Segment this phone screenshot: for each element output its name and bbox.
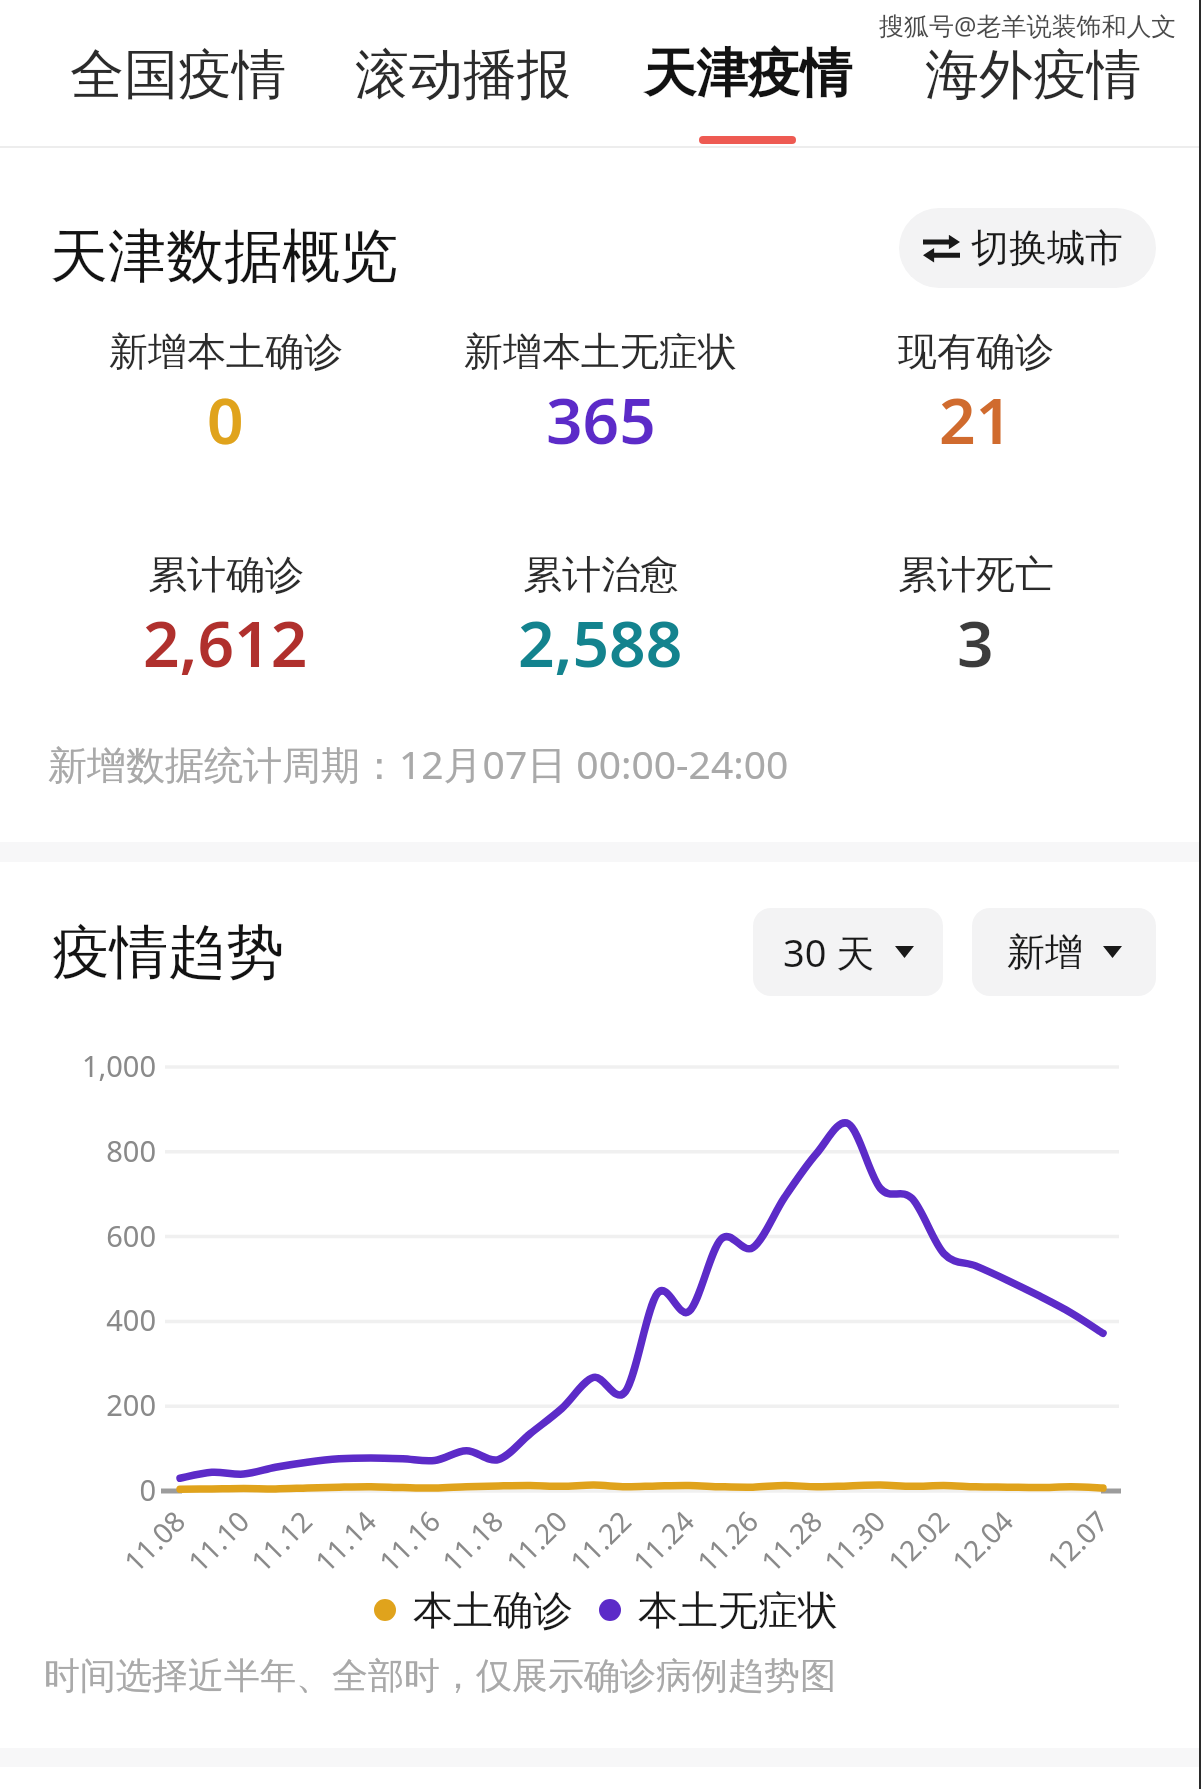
button[interactable]: 新增: [972, 908, 1156, 996]
button[interactable]: 新增本土确诊: [38, 327, 413, 463]
staticText: 本土无症状: [638, 1585, 838, 1635]
staticText: 新增本土无症状: [464, 327, 737, 376]
button[interactable]: 本土无症状: [599, 1585, 838, 1635]
staticText: 600: [0, 1216, 156, 1255]
staticText: 累计死亡: [898, 550, 1054, 599]
staticText: 天津疫情: [644, 41, 852, 107]
staticText: 12.04: [943, 1496, 1027, 1580]
staticText: 滚动播报: [355, 41, 571, 109]
staticText: 天津数据概览: [50, 220, 398, 293]
other: 切换城市: [923, 233, 960, 263]
staticText: 2,588: [518, 599, 683, 686]
staticText: 海外疫情: [925, 41, 1141, 109]
button[interactable]: 新增本土无症状: [413, 327, 788, 463]
button[interactable]: 天津疫情: [605, 0, 890, 150]
staticText: 30 天: [783, 926, 875, 978]
staticText: 时间选择近半年、全部时，仅展示确诊病例趋势图: [44, 1653, 836, 1698]
button[interactable]: 切换城市: [899, 208, 1156, 288]
staticText: 400: [0, 1300, 156, 1339]
staticText: 3: [957, 599, 994, 686]
staticText: 11.08: [115, 1496, 199, 1580]
staticText: 11.26: [688, 1496, 772, 1580]
staticText: 现有确诊: [898, 327, 1054, 376]
staticText: 11.28: [752, 1496, 836, 1580]
button[interactable]: 滚动播报: [320, 0, 605, 150]
staticText: 11.20: [497, 1496, 581, 1580]
staticText: 800: [0, 1131, 156, 1170]
staticText: 新增本土确诊: [109, 327, 343, 376]
staticText: 累计治愈: [523, 550, 679, 599]
staticText: 全国疫情: [70, 41, 286, 109]
staticText: 0: [207, 376, 244, 463]
staticText: 12.02: [879, 1496, 963, 1580]
staticText: 11.14: [306, 1496, 390, 1580]
button[interactable]: 全国疫情: [35, 0, 320, 150]
button[interactable]: 累计确诊: [38, 550, 413, 686]
button[interactable]: 现有确诊: [788, 327, 1163, 463]
button[interactable]: 累计死亡: [788, 550, 1163, 686]
staticText: 切换城市: [971, 224, 1123, 272]
staticText: 1,000: [0, 1046, 156, 1085]
staticText: 2,612: [143, 599, 308, 686]
button[interactable]: 本土确诊: [374, 1585, 573, 1635]
staticText: 搜狐号@老羊说装饰和人文: [879, 8, 1177, 42]
button[interactable]: 30 天: [753, 908, 943, 996]
staticText: 11.18: [433, 1496, 517, 1580]
staticText: 11.16: [370, 1496, 454, 1580]
staticText: 12.07: [1038, 1496, 1122, 1580]
staticText: 新增: [1007, 928, 1083, 976]
staticText: 11.10: [179, 1496, 263, 1580]
staticText: 11.30: [815, 1496, 899, 1580]
staticText: 11.12: [242, 1496, 326, 1580]
button[interactable]: 海外疫情: [890, 0, 1175, 150]
staticText: 11.22: [561, 1496, 645, 1580]
staticText: 疫情趋势: [52, 916, 284, 989]
button[interactable]: 累计治愈: [413, 550, 788, 686]
staticText: 200: [0, 1385, 156, 1424]
staticText: 累计确诊: [148, 550, 304, 599]
staticText: 365: [546, 376, 656, 463]
staticText: 21: [939, 376, 1013, 463]
staticText: 本土确诊: [413, 1585, 573, 1635]
staticText: 新增数据统计周期：12月07日 00:00-24:00: [48, 737, 789, 790]
staticText: 11.24: [624, 1496, 708, 1580]
staticText: 0: [0, 1470, 156, 1509]
